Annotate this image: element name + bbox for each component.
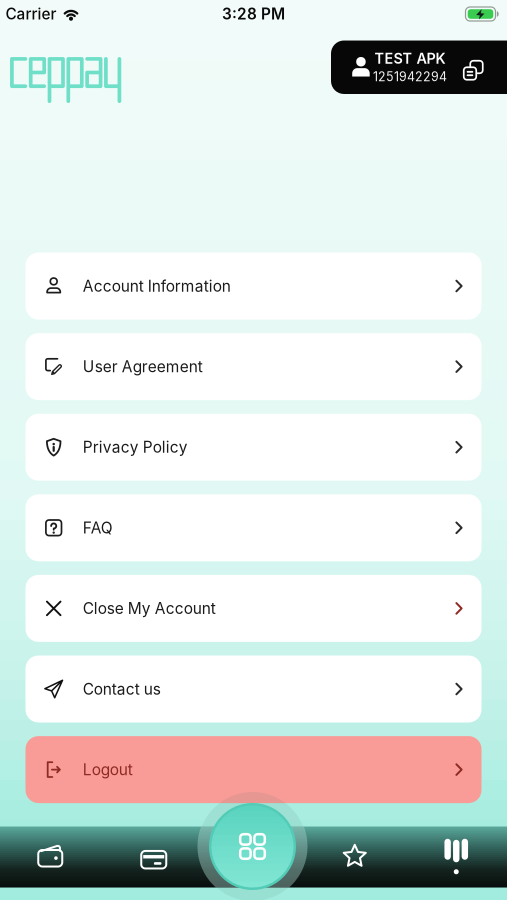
staticText: Privacy Policy (83, 438, 188, 456)
button[interactable]: Home (198, 792, 307, 900)
button[interactable]: Wallet (0, 842, 101, 868)
staticText: FAQ (83, 518, 113, 537)
button[interactable]: User Agreement (25, 333, 481, 400)
staticText: 1251942294 (373, 69, 447, 84)
button[interactable]: Account: TEST APK 1251942294, copy (331, 40, 507, 94)
staticText: Account Information (83, 277, 231, 295)
staticText: User Agreement (83, 357, 203, 376)
button[interactable]: Contact us (25, 655, 481, 722)
staticText: Close My Account (83, 599, 216, 618)
button[interactable]: Favorites (304, 842, 405, 868)
button[interactable]: FAQ (25, 494, 481, 561)
staticText: Logout (83, 760, 133, 779)
button[interactable]: Logout (25, 736, 481, 803)
button[interactable]: Menu (405, 837, 507, 874)
staticText: Carrier (5, 5, 56, 23)
button[interactable]: Privacy Policy (25, 414, 481, 481)
button[interactable]: Account Information (25, 252, 481, 319)
staticText: 3:28 PM (222, 5, 285, 23)
button[interactable]: Cards (101, 842, 203, 868)
button[interactable]: Close My Account (25, 575, 481, 642)
staticText: Contact us (83, 680, 161, 698)
staticText: TEST APK (374, 50, 445, 67)
